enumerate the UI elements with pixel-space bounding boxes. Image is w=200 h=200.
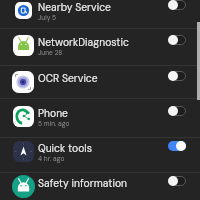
button[interactable]: Switch off xyxy=(168,176,186,186)
staticText: Quick tools xyxy=(38,142,92,155)
button[interactable]: Switch on xyxy=(168,141,186,151)
button[interactable]: OCR Service xyxy=(0,64,200,99)
staticText: 5 min. ago xyxy=(38,119,70,128)
staticText: July 5 xyxy=(38,13,57,22)
button[interactable]: Switch off xyxy=(168,71,186,81)
button[interactable]: Safety information xyxy=(0,169,200,200)
staticText: OCR Service xyxy=(38,72,98,85)
button[interactable]: Nearby Service xyxy=(0,0,200,28)
staticText: June 28 xyxy=(38,48,63,57)
staticText: NetworkDiagnostic xyxy=(38,36,129,49)
button[interactable]: Switch off xyxy=(168,106,186,116)
staticText: Safety information xyxy=(38,177,128,190)
staticText: 4 hr. ago xyxy=(38,154,65,163)
staticText: Phone xyxy=(38,107,68,120)
button[interactable]: Switch off xyxy=(168,0,186,10)
staticText: Nearby Service xyxy=(38,1,111,14)
button[interactable]: Quick tools xyxy=(0,134,200,169)
button[interactable]: Phone xyxy=(0,99,200,134)
button[interactable]: NetworkDiagnostic xyxy=(0,28,200,63)
button[interactable]: Switch off xyxy=(168,35,186,45)
